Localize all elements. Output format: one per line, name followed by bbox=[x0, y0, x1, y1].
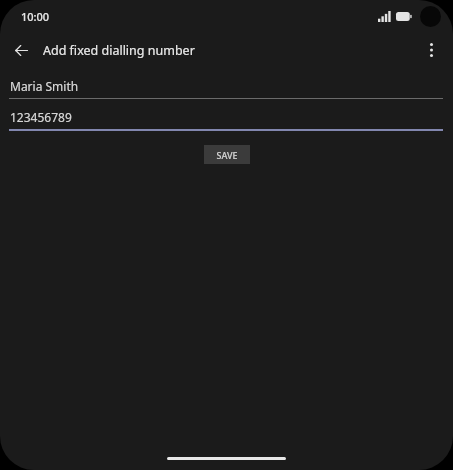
button[interactable]: 123456789 bbox=[9, 109, 443, 131]
staticText: SAVE bbox=[216, 149, 238, 161]
staticText: Maria Smith bbox=[10, 78, 79, 94]
button[interactable]: Back bbox=[7, 36, 35, 64]
button[interactable]: More options bbox=[417, 36, 445, 64]
staticText: 10:00 bbox=[21, 9, 50, 24]
staticText: Add fixed dialling number bbox=[43, 42, 195, 59]
staticText: 123456789 bbox=[10, 109, 72, 125]
button[interactable]: Maria Smith bbox=[9, 68, 443, 99]
button[interactable]: SAVE bbox=[204, 145, 250, 164]
